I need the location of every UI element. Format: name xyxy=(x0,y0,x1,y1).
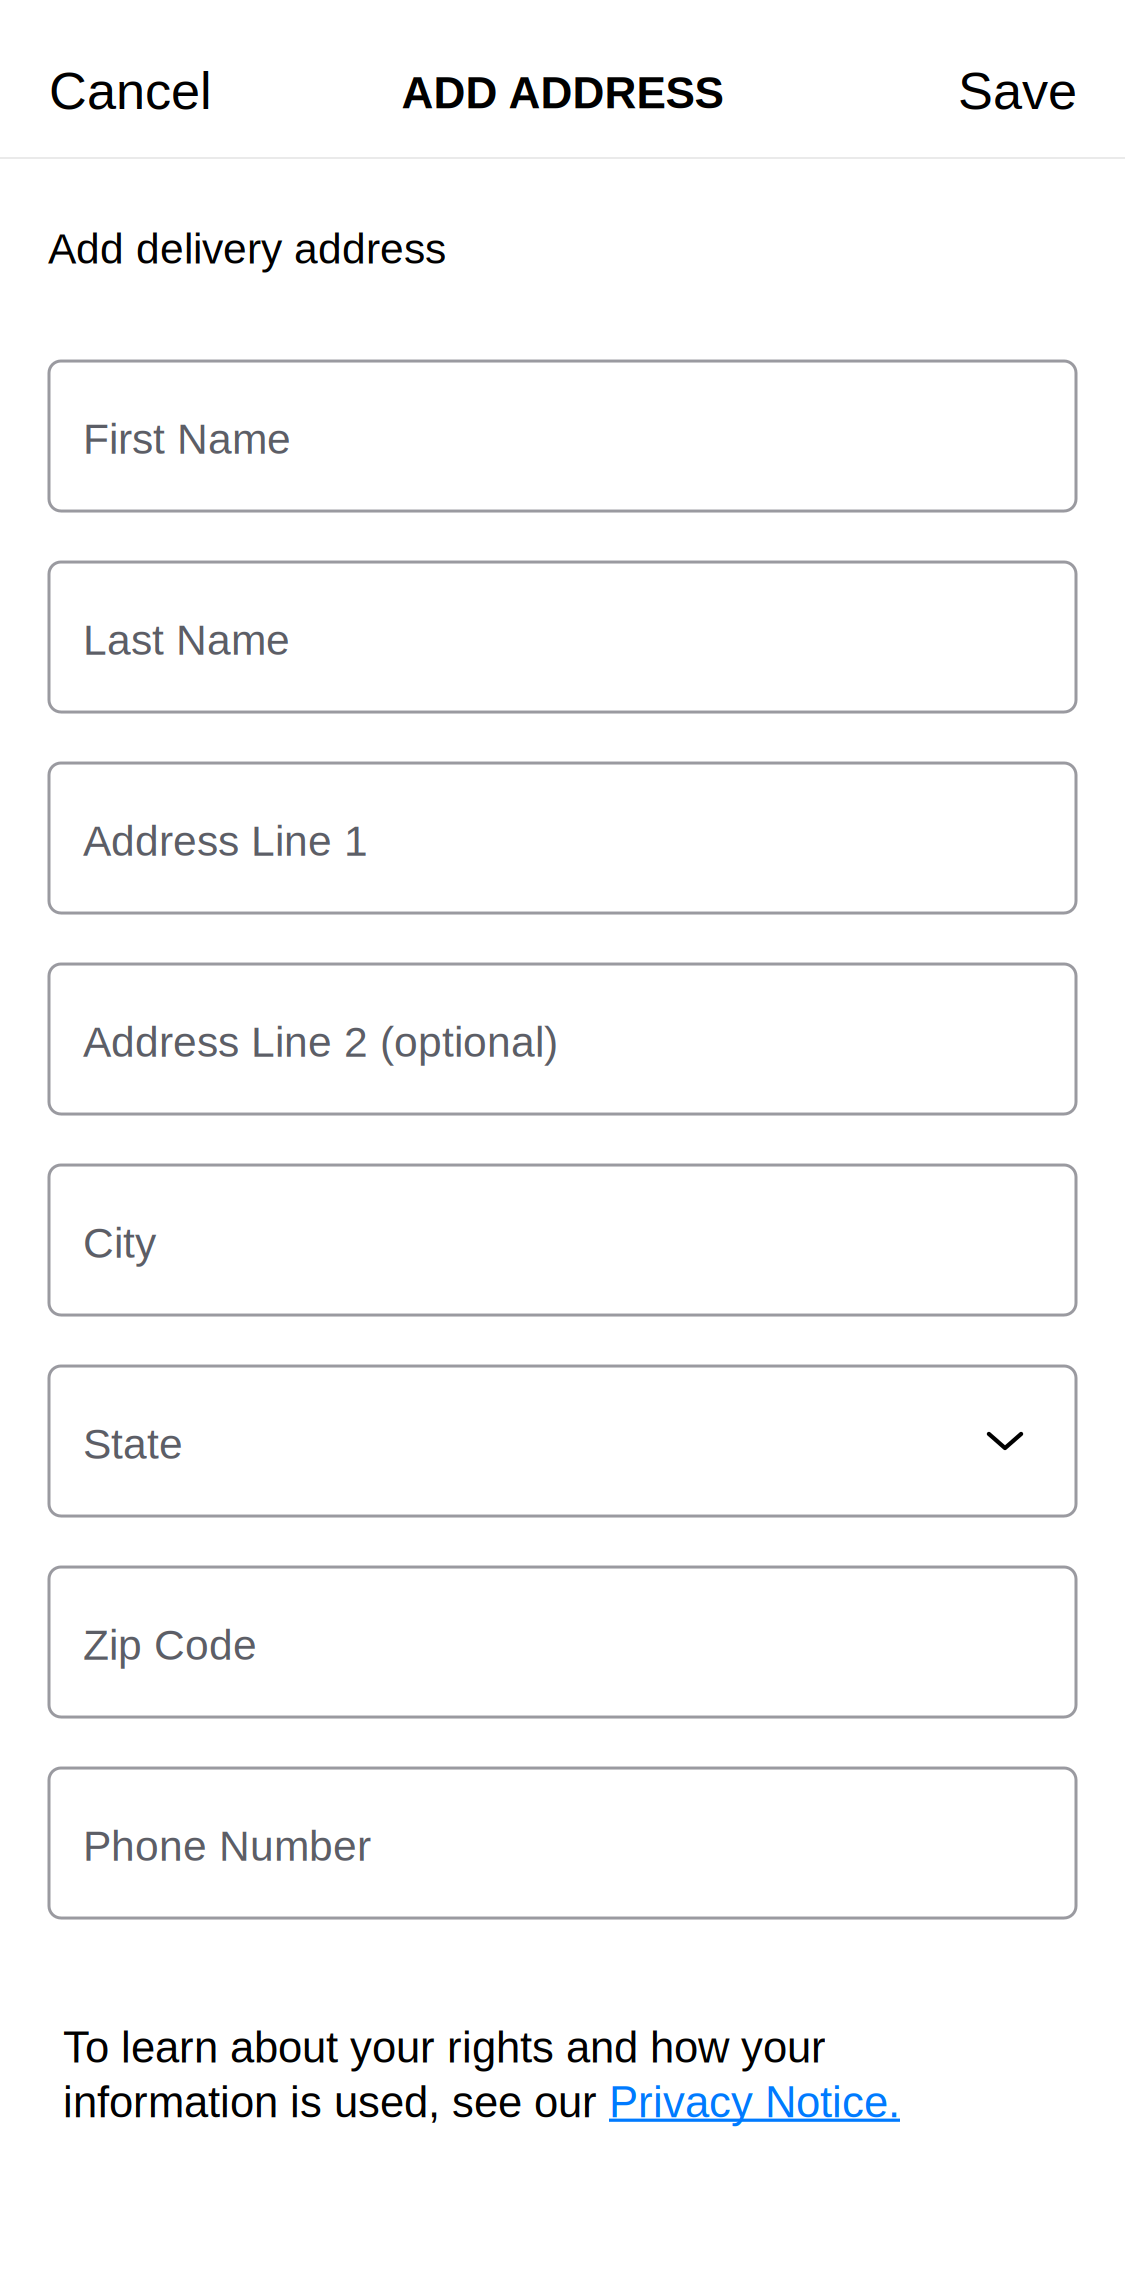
staticText: City xyxy=(83,1219,156,1267)
button[interactable]: Cancel xyxy=(0,36,242,146)
staticText: First Name xyxy=(83,415,291,463)
staticText: Last Name xyxy=(83,616,290,664)
staticText: Privacy Notice. xyxy=(609,2078,900,2126)
staticText: Add delivery address xyxy=(48,225,446,272)
staticText: Zip Code xyxy=(83,1621,257,1669)
staticText: Address Line 1 xyxy=(83,817,368,865)
staticText: information is used, see our xyxy=(63,2078,609,2126)
staticText: Address Line 2 (optional) xyxy=(83,1018,558,1066)
button[interactable]: First Name xyxy=(49,361,1076,511)
staticText: ADD ADDRESS xyxy=(401,68,723,118)
button[interactable]: City xyxy=(49,1165,1076,1315)
staticText: Cancel xyxy=(49,62,212,120)
staticText: State xyxy=(83,1420,183,1468)
staticText: Save xyxy=(958,62,1077,120)
button[interactable]: Zip Code xyxy=(49,1567,1076,1717)
button[interactable]: State xyxy=(49,1366,1076,1516)
button[interactable]: Address Line 1 xyxy=(49,763,1076,913)
button[interactable]: Phone Number xyxy=(49,1768,1076,1918)
button[interactable]: Address Line 2 (optional) xyxy=(49,964,1076,1114)
button[interactable]: Privacy Notice. xyxy=(609,2078,900,2126)
button[interactable]: Save xyxy=(928,36,1125,146)
button[interactable]: Last Name xyxy=(49,562,1076,712)
staticText: Phone Number xyxy=(83,1822,371,1870)
staticText: To learn about your rights and how your xyxy=(63,2023,826,2072)
